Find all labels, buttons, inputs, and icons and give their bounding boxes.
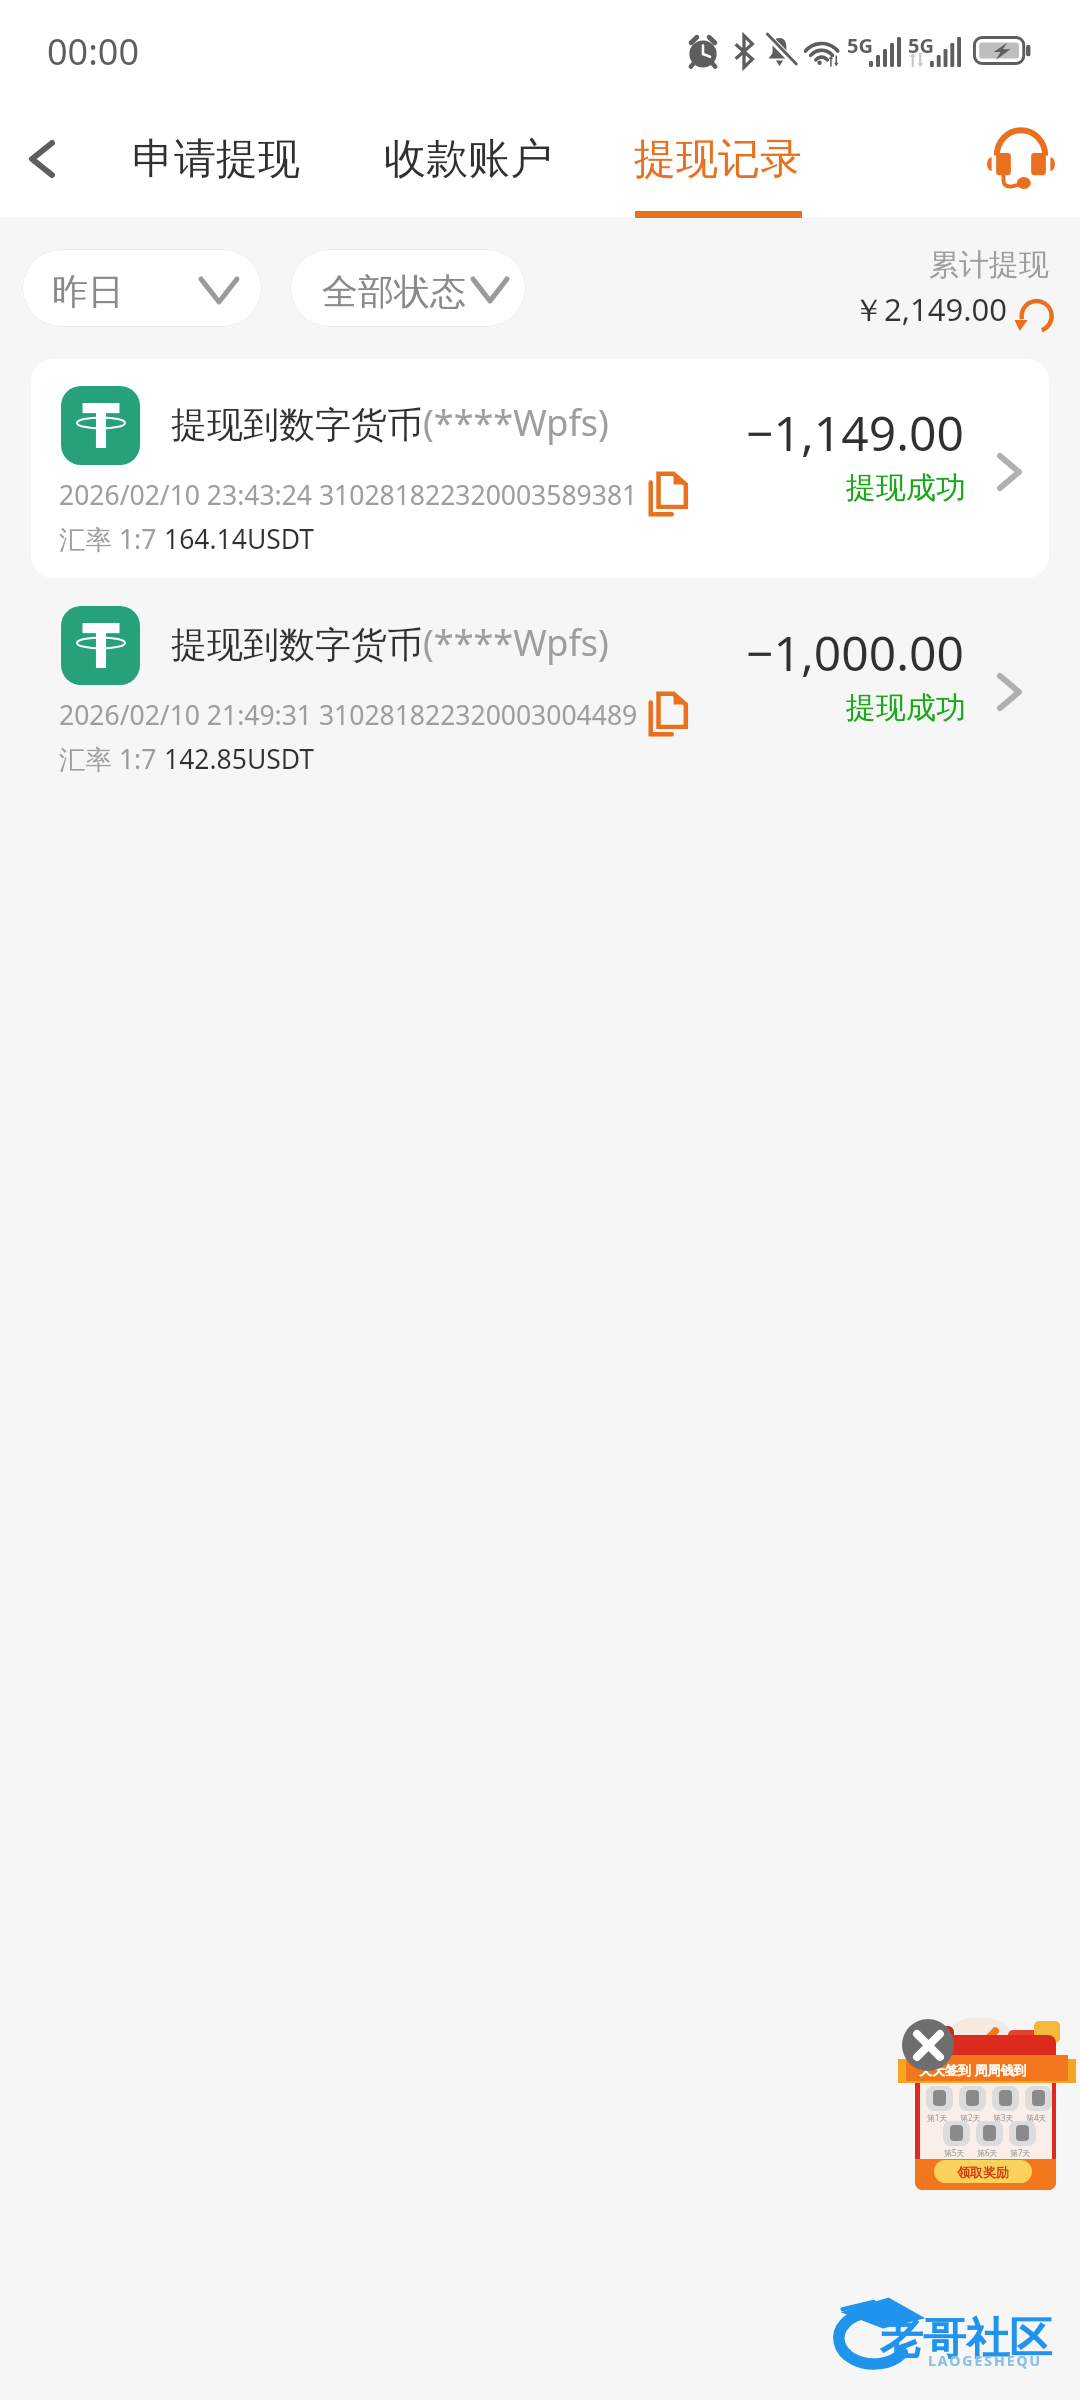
staticText: 昨日 <box>52 269 124 314</box>
button[interactable]: 提现到数字货币 <box>31 359 1049 578</box>
button[interactable]: Copy <box>637 464 697 524</box>
staticText: −1,000.00 <box>746 620 964 685</box>
staticText: 提现到数字货币 <box>171 402 423 447</box>
staticText: 第4天 <box>1026 2112 1047 2123</box>
button[interactable]: Copy <box>637 684 697 744</box>
staticText: 第1天 <box>927 2112 948 2123</box>
staticText: 第6天 <box>977 2147 998 2158</box>
staticText: 第5天 <box>944 2147 965 2158</box>
button[interactable]: Customer service <box>978 116 1064 202</box>
staticText: ￥2,149.00 <box>853 288 1008 330</box>
staticText: 汇率 1:7 <box>59 521 164 557</box>
button[interactable]: 提现记录 <box>634 133 802 217</box>
staticText: LAOGESHEQU <box>928 2351 1043 2370</box>
staticText: 申请提现 <box>132 133 300 186</box>
button[interactable]: Close <box>902 2019 954 2071</box>
staticText: 收款账户 <box>384 133 552 186</box>
button[interactable]: Refresh <box>1008 292 1060 344</box>
staticText: 第3天 <box>993 2112 1014 2123</box>
button[interactable]: 昨日 <box>22 249 262 327</box>
button[interactable]: 领取奖励 <box>934 2160 1032 2183</box>
staticText: 提现成功 <box>846 689 966 727</box>
staticText: 第2天 <box>960 2112 981 2123</box>
button[interactable]: 收款账户 <box>384 133 552 217</box>
staticText: 2026/02/10 23:43:24 31028182232000358938… <box>59 477 638 513</box>
staticText: 2026/02/10 21:49:31 31028182232000300448… <box>59 697 638 733</box>
staticText: (****Wpfs) <box>423 398 609 447</box>
staticText: 全部状态 <box>322 269 466 314</box>
staticText: −1,149.00 <box>746 400 964 465</box>
staticText: 142.85USDT <box>164 741 315 777</box>
button[interactable]: 提现到数字货币 <box>31 579 1049 798</box>
staticText: 领取奖励 <box>957 2164 1009 2180</box>
staticText: 第7天 <box>1010 2147 1031 2158</box>
staticText: 天天签到 周周钱到 <box>919 2061 1027 2079</box>
staticText: (****Wpfs) <box>423 618 609 667</box>
staticText: 提现记录 <box>634 133 802 186</box>
staticText: 累计提现 <box>929 246 1049 284</box>
staticText: 提现成功 <box>846 469 966 507</box>
staticText: 5G <box>908 32 934 59</box>
staticText: 164.14USDT <box>164 521 315 557</box>
button[interactable]: Back <box>6 123 78 195</box>
button[interactable]: 申请提现 <box>132 133 300 217</box>
staticText: 老哥社区 <box>880 2312 1052 2366</box>
button[interactable]: Daily check-in promotion <box>898 2016 1076 2196</box>
staticText: 00:00 <box>47 27 140 76</box>
staticText: 提现到数字货币 <box>171 622 423 667</box>
staticText: 5G <box>847 32 873 59</box>
staticText: 汇率 1:7 <box>59 741 164 777</box>
button[interactable]: 全部状态 <box>290 249 526 327</box>
